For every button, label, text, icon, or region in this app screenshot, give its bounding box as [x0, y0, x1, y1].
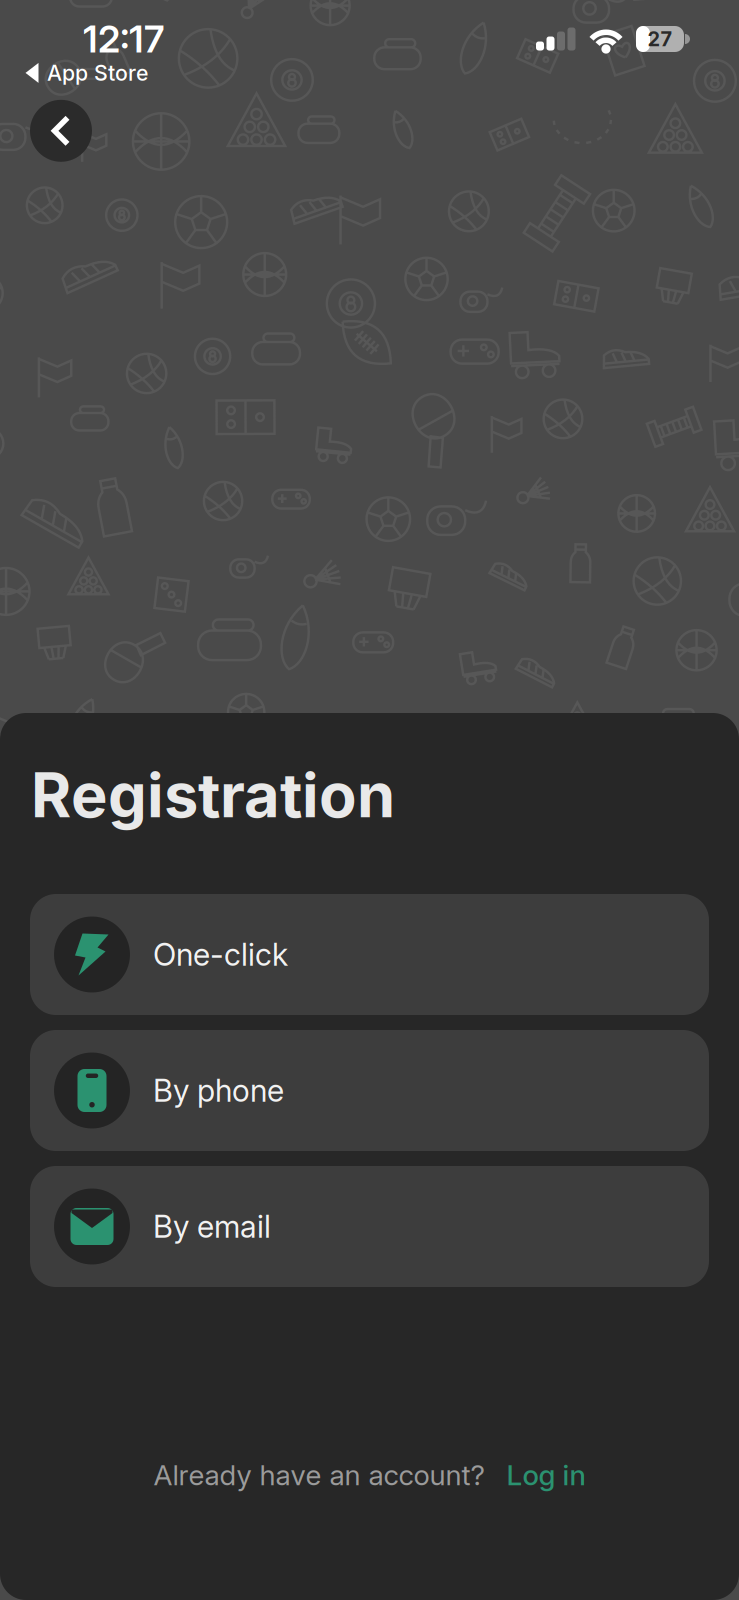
button[interactable]: Log in: [484, 1458, 585, 1492]
staticText: Already have an account?: [153, 1458, 484, 1492]
button[interactable]: Back: [30, 100, 92, 162]
staticText: Registration: [31, 758, 395, 832]
staticText: 27: [647, 27, 672, 51]
staticText: Log in: [506, 1458, 585, 1492]
staticText: By phone: [153, 1072, 284, 1109]
button[interactable]: One-click: [30, 894, 709, 1015]
staticText: 12:17: [83, 16, 164, 62]
button[interactable]: By phone: [30, 1030, 709, 1151]
button[interactable]: By email: [30, 1166, 709, 1287]
staticText: App Store: [47, 60, 148, 86]
staticText: By email: [153, 1208, 271, 1245]
staticText: One-click: [153, 936, 288, 973]
